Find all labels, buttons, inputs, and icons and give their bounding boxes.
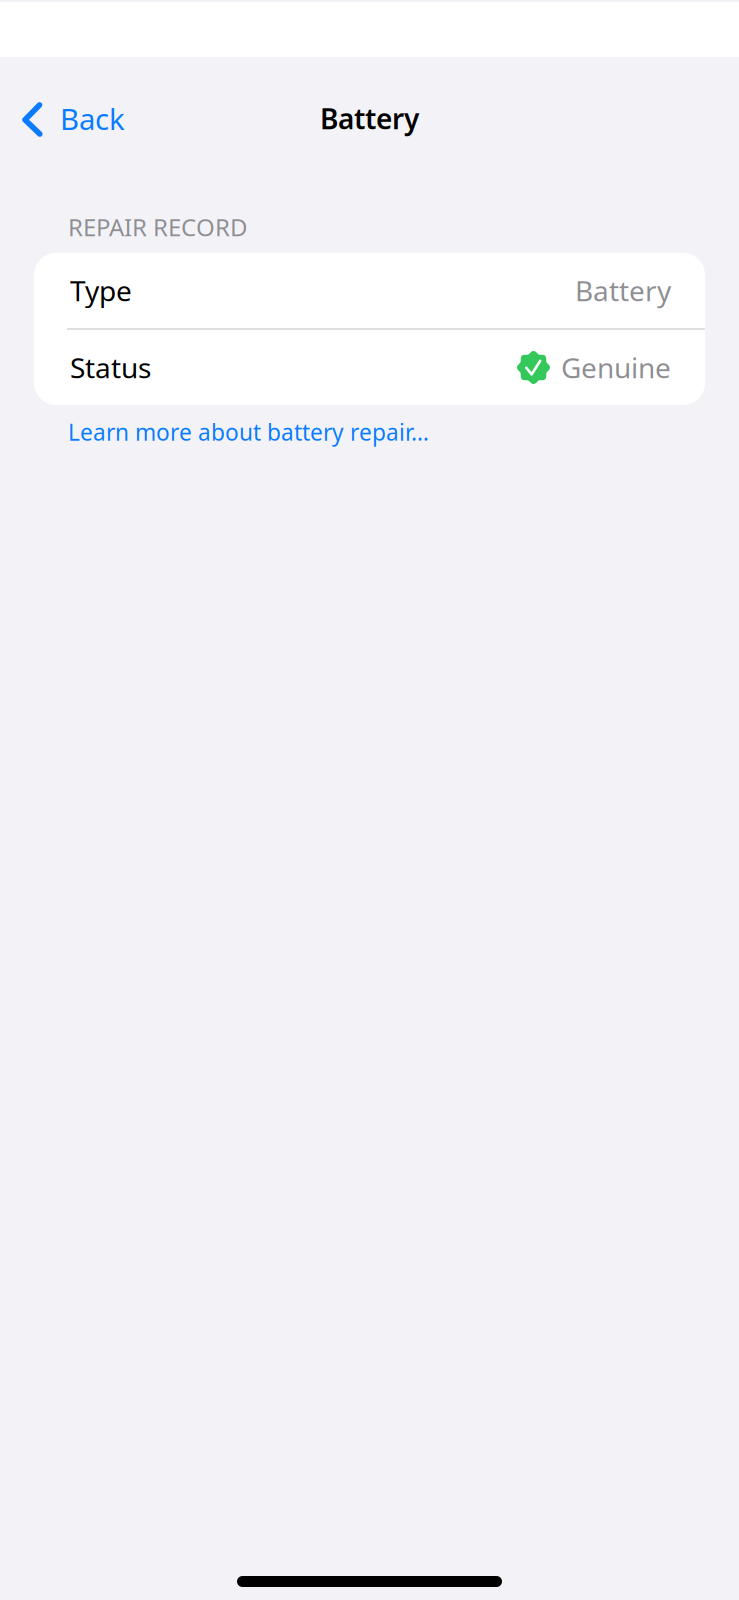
staticText: Back <box>60 99 125 138</box>
staticText: REPAIR RECORD <box>68 211 248 243</box>
button[interactable]: Type <box>34 253 705 328</box>
staticText: Learn more about battery repair… <box>68 417 429 447</box>
button[interactable]: Back <box>0 87 139 149</box>
button[interactable]: Status <box>34 330 705 405</box>
staticText: Battery <box>320 100 419 137</box>
button[interactable]: Learn more about battery repair… <box>0 405 445 455</box>
staticText: Type <box>70 272 132 309</box>
staticText: Status <box>70 349 151 386</box>
staticText: Genuine <box>561 349 671 386</box>
staticText: Battery <box>575 272 671 309</box>
